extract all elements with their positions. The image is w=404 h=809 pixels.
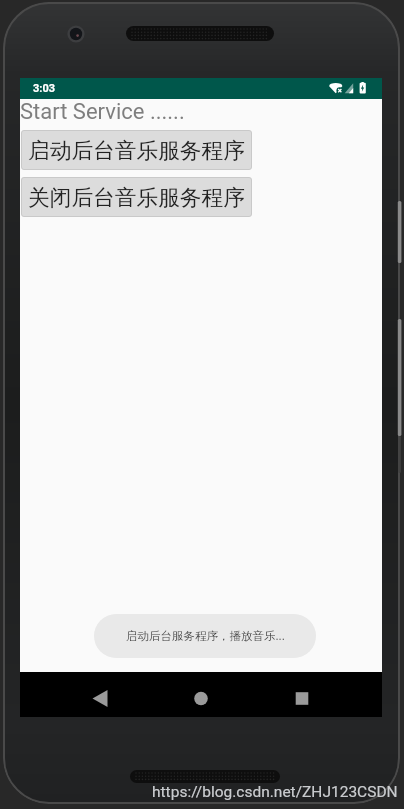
staticText: 3:03 xyxy=(33,82,56,95)
staticText: 启动后台音乐服务程序 xyxy=(28,137,245,164)
button[interactable]: 关闭后台音乐服务程序 xyxy=(21,177,252,217)
button[interactable] xyxy=(183,677,219,713)
staticText: 启动后台服务程序，播放音乐... xyxy=(126,628,285,644)
button[interactable] xyxy=(284,677,320,713)
staticText: 关闭后台音乐服务程序 xyxy=(28,184,245,211)
button[interactable]: 启动后台音乐服务程序 xyxy=(21,130,252,170)
staticText: https://blog.csdn.net/ZHJ123CSDN xyxy=(152,783,398,801)
staticText: Start Service ...... xyxy=(20,99,185,125)
button[interactable] xyxy=(82,677,118,713)
